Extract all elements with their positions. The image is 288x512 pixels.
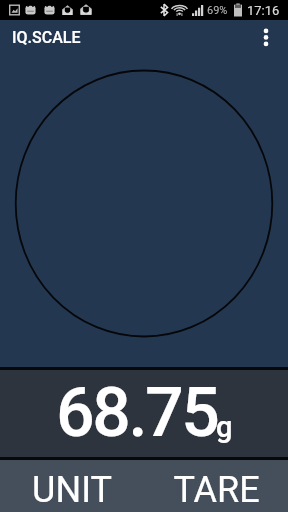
staticText: UNIT: [32, 469, 112, 511]
staticText: 68.75: [56, 373, 218, 453]
button[interactable]: UNIT: [0, 460, 144, 512]
staticText: 17:16: [247, 3, 280, 18]
staticText: IQ.SCALE: [12, 28, 81, 47]
staticText: 69%: [207, 4, 228, 17]
staticText: g: [216, 410, 233, 444]
button[interactable]: TARE: [144, 460, 288, 512]
staticText: TARE: [173, 469, 260, 511]
button[interactable]: More options: [244, 20, 288, 53]
